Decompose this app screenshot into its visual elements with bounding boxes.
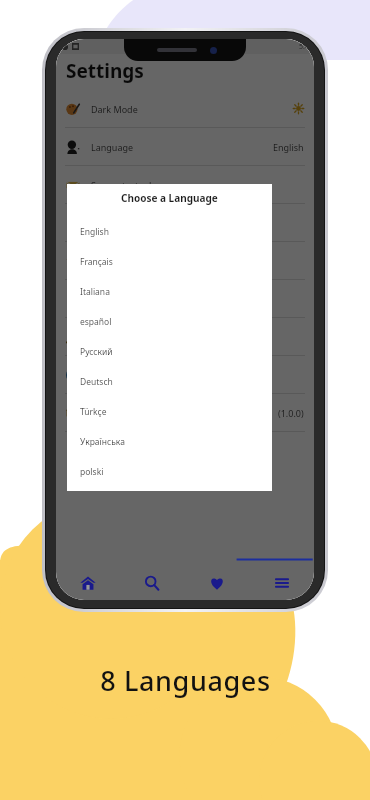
button[interactable]: Home — [56, 566, 120, 600]
staticText: (1.0.0) — [278, 407, 304, 419]
staticText: Settings — [66, 58, 144, 84]
staticText: Language — [91, 141, 134, 153]
staticText: Русский — [80, 346, 113, 358]
staticText: Feedback — [91, 217, 132, 229]
staticText: Deutsch — [80, 376, 113, 388]
staticText: English — [273, 141, 304, 153]
staticText: More apps — [91, 293, 136, 305]
button[interactable]: Version — [56, 394, 314, 431]
button[interactable]: Feedback — [56, 204, 314, 241]
button[interactable]: Deutsch — [67, 367, 272, 397]
staticText: Italiana — [80, 286, 110, 298]
staticText: About — [91, 369, 117, 381]
button[interactable]: More apps — [56, 280, 314, 317]
staticText: Suggest a tool — [91, 179, 152, 191]
staticText: Dark Mode — [91, 103, 138, 115]
button[interactable]: español — [67, 307, 272, 337]
button[interactable]: About — [56, 356, 314, 393]
button[interactable]: Menu — [249, 566, 314, 600]
staticText: Українська — [80, 436, 125, 448]
button[interactable]: Language — [56, 128, 314, 165]
staticText: polski — [80, 466, 104, 478]
staticText: 8 Languages — [100, 662, 271, 699]
staticText: Rate us — [91, 255, 123, 267]
button[interactable]: Italiana — [67, 277, 272, 307]
staticText: Choose a Language — [121, 191, 218, 205]
button[interactable]: polski — [67, 457, 272, 487]
staticText: español — [80, 316, 112, 328]
button[interactable]: Favorites — [184, 566, 249, 600]
staticText: Version — [91, 407, 123, 419]
button[interactable]: Türkçe — [67, 397, 272, 427]
button[interactable]: Українська — [67, 427, 272, 457]
button[interactable]: Disclaimer — [56, 318, 314, 355]
button[interactable]: Suggest a tool — [56, 166, 314, 203]
staticText: Français — [80, 256, 113, 268]
button[interactable]: Dark Mode — [56, 90, 314, 127]
staticText: Türkçe — [80, 406, 107, 418]
button[interactable]: Русский — [67, 337, 272, 367]
staticText: English — [80, 226, 109, 238]
button[interactable]: Rate us — [56, 242, 314, 279]
button[interactable]: English — [67, 217, 272, 247]
button[interactable]: Français — [67, 247, 272, 277]
button[interactable]: Search — [120, 566, 184, 600]
staticText: 5:4 — [299, 42, 309, 52]
